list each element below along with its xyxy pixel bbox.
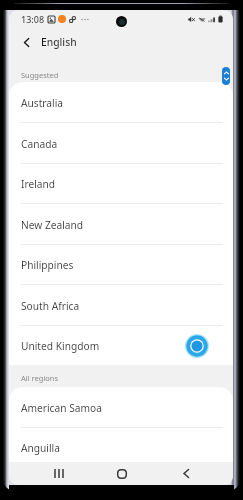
- staticText: United Kingdom: [21, 339, 100, 353]
- button[interactable]: United Kingdom: [9, 325, 233, 366]
- button[interactable]: Navigate up: [13, 29, 39, 55]
- button[interactable]: American Samoa: [9, 387, 233, 428]
- staticText: Ireland: [21, 177, 56, 191]
- button[interactable]: Fast scroll: [222, 67, 230, 85]
- button[interactable]: South Africa: [9, 285, 233, 326]
- staticText: All regions: [21, 373, 59, 383]
- button[interactable]: Anguilla: [9, 427, 233, 468]
- button[interactable]: Philippines: [9, 244, 233, 285]
- button[interactable]: Home: [109, 462, 135, 485]
- staticText: American Samoa: [21, 401, 102, 415]
- staticText: Suggested: [21, 70, 59, 80]
- staticText: New Zealand: [21, 218, 84, 232]
- button[interactable]: Recent apps: [46, 462, 72, 485]
- staticText: 13:08: [21, 13, 45, 25]
- staticText: English: [41, 35, 77, 49]
- staticText: Australia: [21, 96, 64, 110]
- button[interactable]: Back: [173, 462, 199, 485]
- button[interactable]: New Zealand: [9, 204, 233, 245]
- button[interactable]: Canada: [9, 123, 233, 164]
- staticText: Philippines: [21, 258, 74, 272]
- staticText: Canada: [21, 137, 58, 151]
- staticText: Anguilla: [21, 441, 60, 455]
- staticText: South Africa: [21, 299, 80, 313]
- button[interactable]: Ireland: [9, 163, 233, 204]
- button[interactable]: Australia: [9, 82, 233, 123]
